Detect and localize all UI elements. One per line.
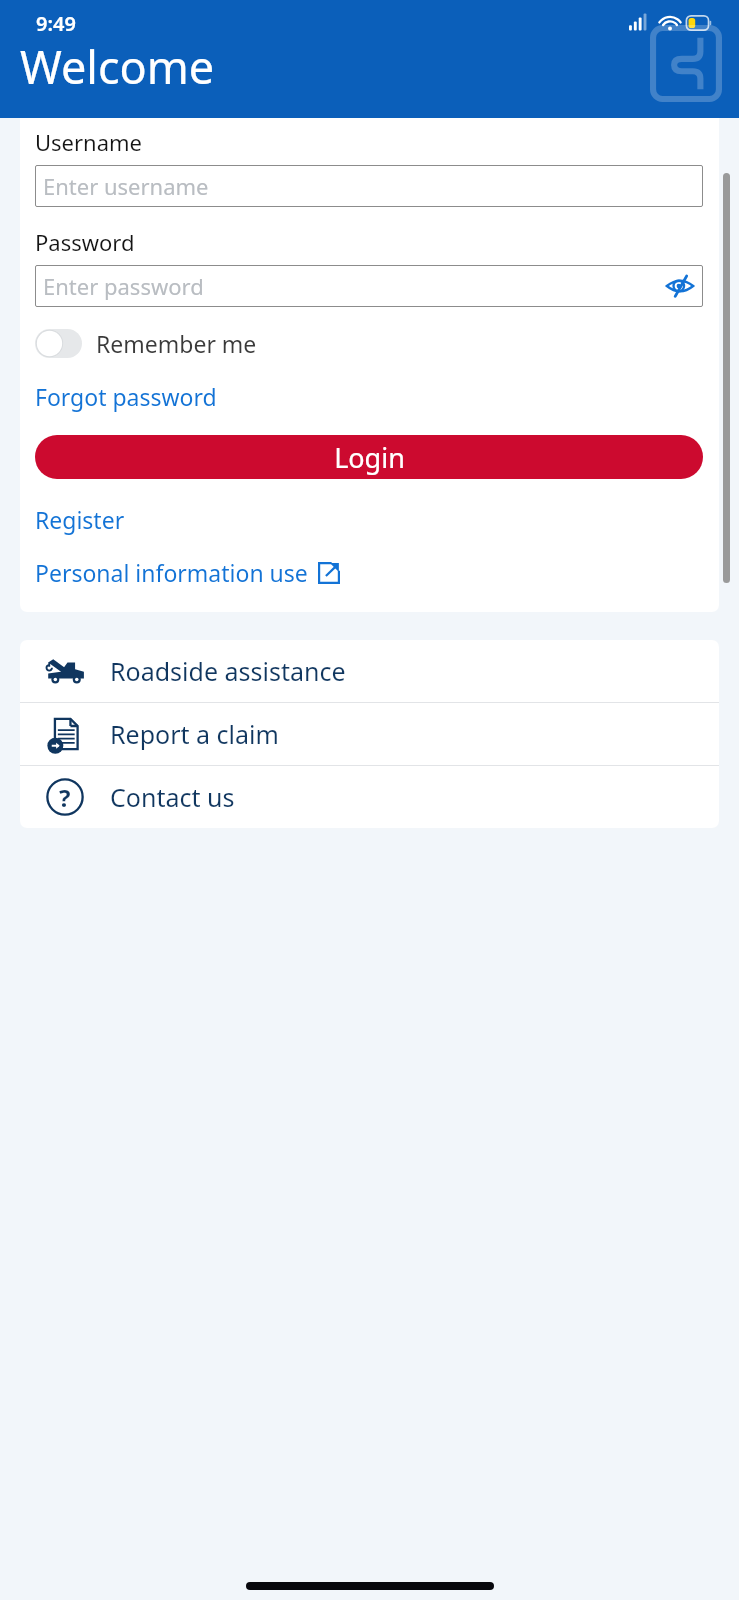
staticText: Username: [35, 127, 143, 157]
button[interactable]: ?: [20, 766, 719, 828]
staticText: Remember me: [96, 328, 257, 359]
button[interactable]: Show password: [665, 275, 695, 297]
staticText: Contact us: [110, 780, 235, 814]
staticText: ?: [59, 781, 71, 814]
staticText: Enter username: [43, 171, 209, 201]
staticText: Report a claim: [110, 717, 279, 751]
staticText: Welcome: [20, 36, 215, 97]
button[interactable]: Enter password: [35, 265, 703, 307]
button[interactable]: Enter username: [35, 165, 703, 207]
staticText: Personal information use: [35, 557, 308, 588]
button[interactable]: Roadside assistance: [20, 640, 719, 702]
button[interactable]: Personal information use: [35, 557, 340, 588]
staticText: Roadside assistance: [110, 654, 346, 688]
button[interactable]: Remember me: [35, 328, 257, 359]
staticText: Login: [334, 439, 405, 476]
staticText: Password: [35, 227, 135, 257]
button[interactable]: Report a claim: [20, 703, 719, 765]
staticText: 9:49: [36, 10, 76, 37]
button[interactable]: Register: [35, 504, 125, 535]
button[interactable]: Login: [35, 435, 703, 479]
staticText: Forgot password: [35, 381, 217, 412]
staticText: Register: [35, 504, 125, 535]
staticText: Enter password: [43, 271, 204, 301]
button[interactable]: Forgot password: [35, 381, 217, 412]
